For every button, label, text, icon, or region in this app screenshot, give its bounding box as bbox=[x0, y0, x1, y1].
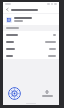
button[interactable] bbox=[3, 45, 59, 52]
button[interactable] bbox=[3, 52, 59, 59]
button[interactable] bbox=[3, 38, 59, 45]
button[interactable]: Back bbox=[5, 7, 10, 12]
button[interactable] bbox=[3, 31, 59, 38]
button[interactable] bbox=[3, 14, 59, 25]
other: Print bbox=[45, 90, 49, 94]
button[interactable]: Print bbox=[40, 87, 54, 97]
button[interactable]: Scan bbox=[8, 87, 21, 100]
